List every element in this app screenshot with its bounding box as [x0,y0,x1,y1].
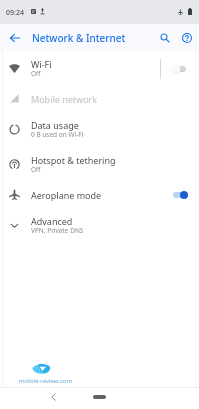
button[interactable]: Back [47,391,59,403]
button[interactable]: Back [4,27,26,49]
button[interactable]: Help [176,27,198,49]
staticText: Network & Internet [32,31,126,45]
button[interactable]: Home [93,395,106,399]
staticText: mobile-review.com [19,377,73,385]
staticText: VPN, Private DNS [31,226,84,235]
staticText: Advanced [31,215,73,227]
button[interactable]: Advanced [0,210,199,241]
staticText: Hotspot & tethering [31,154,116,166]
button[interactable]: Aeroplane mode [0,179,199,210]
staticText: Data usage [31,119,79,131]
staticText: 0 B used on Wi-Fi [31,130,84,139]
button[interactable]: Wi-Fi [0,53,199,84]
staticText: Wi-Fi [31,58,52,70]
button[interactable]: Hotspot & tethering [0,149,199,180]
button[interactable]: Mobile network [0,83,199,114]
staticText: Off [31,165,41,174]
staticText: Mobile network [31,93,98,105]
button[interactable]: Data usage [0,114,199,145]
button[interactable]: Search [154,27,176,49]
staticText: Off [31,69,41,78]
staticText: Aeroplane mode [31,189,102,201]
staticText: 09:24 [6,8,24,18]
